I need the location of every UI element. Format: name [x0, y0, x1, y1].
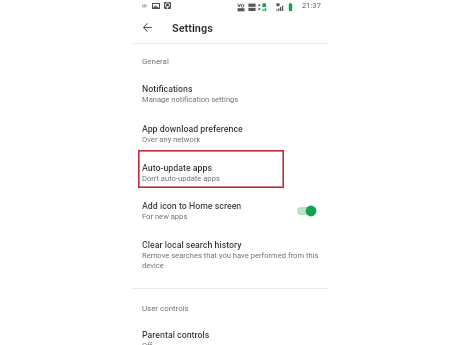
- staticText: Off: [142, 341, 327, 345]
- staticText: Remove searches that you have performed …: [142, 251, 322, 270]
- staticText: Add icon to Home screen: [142, 201, 332, 211]
- staticText: Manage notification settings: [142, 95, 327, 104]
- button[interactable]: [133, 322, 328, 345]
- staticText: 21:37: [302, 1, 321, 10]
- staticText: Auto-update apps: [142, 163, 332, 173]
- staticText: User controls: [142, 304, 222, 313]
- staticText: Parental controls: [142, 330, 332, 340]
- button[interactable]: [133, 154, 328, 193]
- button[interactable]: [133, 115, 328, 154]
- button[interactable]: Back: [136, 16, 159, 39]
- button[interactable]: [133, 193, 328, 232]
- staticText: Clear local search history: [142, 240, 332, 250]
- staticText: General: [142, 57, 222, 66]
- staticText: For new apps: [142, 212, 292, 221]
- button[interactable]: [133, 76, 328, 115]
- button[interactable]: [133, 232, 328, 280]
- staticText: Over any network: [142, 135, 327, 144]
- staticText: Don't auto-update apps: [142, 174, 327, 183]
- staticText: Notifications: [142, 84, 332, 94]
- staticText: App download preference: [142, 124, 332, 134]
- button[interactable]: Add icon to Home screen toggle: [294, 202, 319, 220]
- staticText: Settings: [172, 22, 252, 35]
